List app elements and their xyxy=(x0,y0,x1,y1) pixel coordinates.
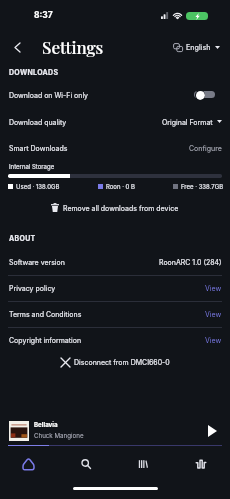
button[interactable]: Copyright information xyxy=(0,327,230,353)
button[interactable]: Search xyxy=(57,452,114,475)
button[interactable]: Disconnect from DMCI660-0 xyxy=(0,353,230,371)
staticText: DOWNLOADS xyxy=(9,68,59,76)
staticText: Privacy policy xyxy=(9,284,56,292)
staticText: English xyxy=(186,43,211,52)
staticText: Free · 338.7GB xyxy=(181,183,224,190)
staticText: Smart Downloads xyxy=(9,144,68,152)
staticText: Copyright information xyxy=(9,336,82,344)
button[interactable]: Smart Downloads xyxy=(0,136,230,159)
button[interactable]: Library xyxy=(114,452,172,475)
staticText: Download on Wi-Fi only xyxy=(9,91,89,99)
button[interactable]: Remove all downloads from device xyxy=(0,199,230,216)
button[interactable]: Software version xyxy=(0,249,230,275)
staticText: ABOUT xyxy=(9,234,36,242)
staticText: Chuck Mangione xyxy=(34,432,84,440)
staticText: RoonARC 1.0 (284) xyxy=(159,258,222,266)
button[interactable]: Terms and Conditions xyxy=(0,301,230,327)
staticText: Remove all downloads from device xyxy=(63,204,179,212)
staticText: Internal Storage xyxy=(9,163,55,170)
staticText: Terms and Conditions xyxy=(9,310,82,318)
staticText: View xyxy=(205,310,222,318)
staticText: View xyxy=(205,336,222,344)
button[interactable]: Now playing xyxy=(172,452,230,475)
staticText: Settings xyxy=(42,36,104,59)
staticText: 8:37 xyxy=(34,10,53,20)
staticText: Disconnect from DMCI660-0 xyxy=(74,358,170,366)
staticText: Used · 138.0GB xyxy=(16,183,60,190)
staticText: Original Format xyxy=(162,118,213,126)
staticText: Configure xyxy=(189,144,222,152)
button[interactable]: Download on Wi-Fi only xyxy=(0,83,230,106)
button[interactable]: English xyxy=(173,38,220,56)
staticText: View xyxy=(205,284,222,292)
button[interactable]: Privacy policy xyxy=(0,275,230,301)
staticText: Bellavia xyxy=(34,421,58,429)
button[interactable]: Back xyxy=(5,36,29,58)
button[interactable]: Download quality xyxy=(0,110,230,133)
staticText: Roon · 0 B xyxy=(106,183,136,190)
button[interactable]: Play xyxy=(203,422,221,440)
button[interactable]: Home xyxy=(0,452,57,475)
staticText: Download quality xyxy=(9,118,67,126)
button[interactable]: Bellavia xyxy=(0,416,230,445)
staticText: Software version xyxy=(9,258,65,266)
